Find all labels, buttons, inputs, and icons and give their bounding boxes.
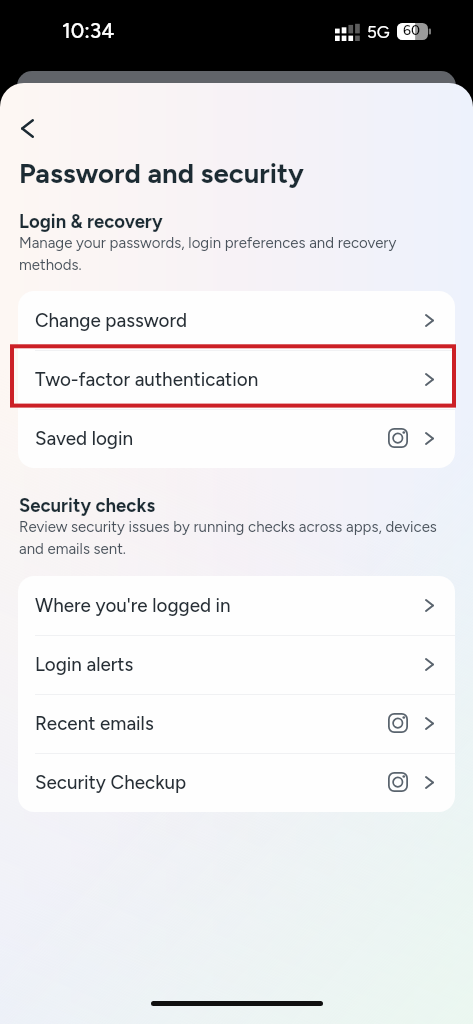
staticText: Two-factor authentication bbox=[35, 368, 259, 391]
button[interactable]: Change password bbox=[18, 291, 455, 350]
staticText: Review security issues by running checks… bbox=[19, 518, 443, 557]
staticText: 10:34 bbox=[62, 18, 115, 43]
staticText: Where you're logged in bbox=[35, 594, 231, 617]
staticText: 5G bbox=[367, 22, 390, 42]
staticText: Security Checkup bbox=[35, 771, 187, 794]
staticText: Security checks bbox=[19, 494, 156, 516]
staticText: Password and security bbox=[19, 157, 304, 190]
staticText: Login alerts bbox=[35, 653, 134, 676]
staticText: 60 bbox=[403, 22, 420, 39]
staticText: Manage your passwords, login preferences… bbox=[19, 234, 443, 273]
staticText: Login & recovery bbox=[19, 210, 163, 232]
button[interactable]: Where you're logged in bbox=[18, 576, 455, 635]
button[interactable]: Security Checkup bbox=[18, 753, 455, 812]
staticText: Recent emails bbox=[35, 712, 154, 735]
staticText: Change password bbox=[35, 309, 188, 332]
button[interactable]: Back bbox=[5, 103, 49, 147]
button[interactable]: Login alerts bbox=[18, 635, 455, 694]
button[interactable]: Saved login bbox=[18, 409, 455, 468]
button[interactable]: Recent emails bbox=[18, 694, 455, 753]
staticText: Saved login bbox=[35, 427, 134, 450]
button[interactable]: Two-factor authentication bbox=[18, 350, 455, 409]
